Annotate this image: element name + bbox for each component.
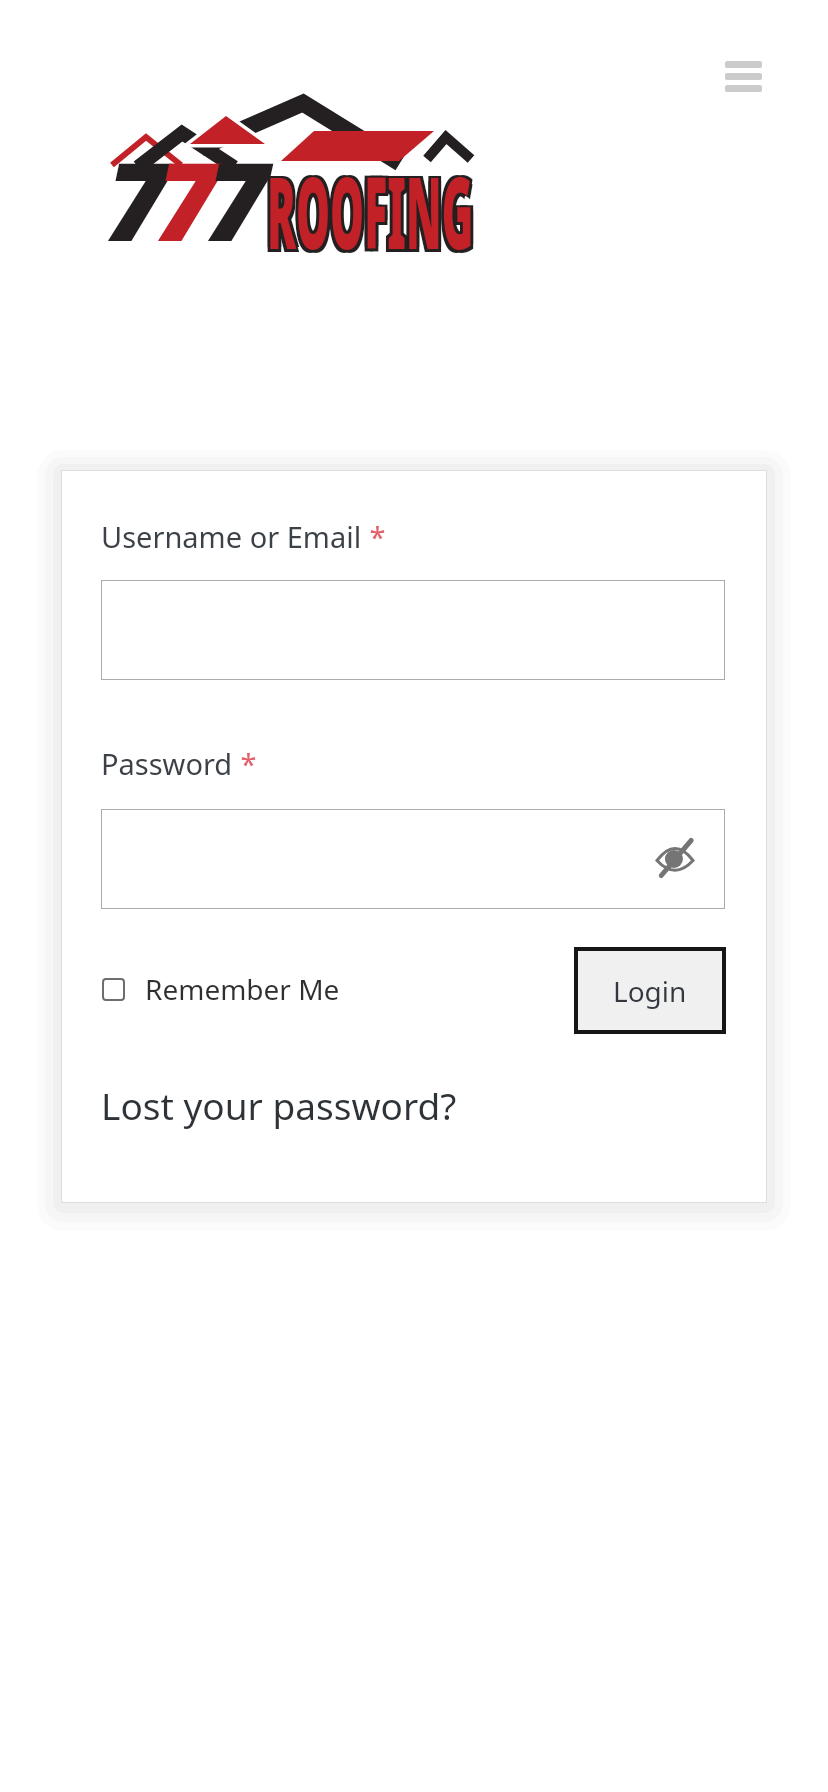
- staticText: *: [362, 517, 386, 556]
- button[interactable]: Login: [574, 947, 726, 1034]
- button[interactable]: Remember Me: [99, 967, 343, 1011]
- staticText: ROOFING: [270, 142, 476, 276]
- staticText: Login: [613, 972, 687, 1010]
- staticText: Password: [101, 744, 233, 783]
- staticText: 7: [106, 126, 169, 273]
- button[interactable]: [721, 57, 766, 99]
- button[interactable]: [657, 844, 693, 874]
- staticText: Username or Email: [101, 517, 362, 556]
- staticText: 7: [206, 126, 269, 273]
- button[interactable]: [101, 580, 725, 680]
- staticText: 7: [156, 126, 219, 273]
- staticText: ROOFING: [264, 142, 471, 276]
- staticText: *: [233, 744, 257, 783]
- staticText: Remember Me: [145, 970, 340, 1008]
- staticText: ROOFING: [267, 144, 473, 278]
- button[interactable]: Lost your password?: [101, 1080, 457, 1130]
- button[interactable]: [101, 809, 725, 909]
- staticText: ROOFING: [264, 146, 471, 280]
- staticText: ROOFING: [270, 146, 476, 280]
